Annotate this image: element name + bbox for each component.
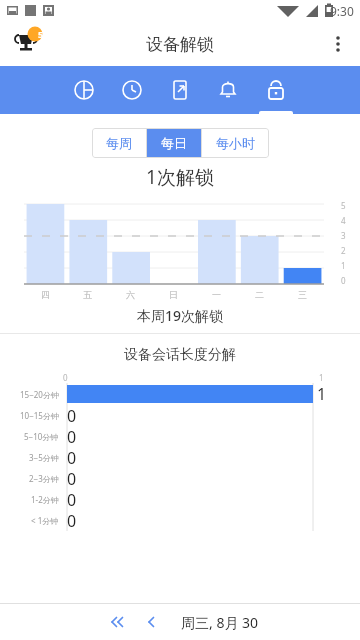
staticText: 一 [212,289,221,300]
button[interactable]: 5−10分钟 [0,426,360,447]
staticText: 每小时 [216,135,255,151]
button[interactable]: More options [316,22,360,66]
staticText: 设备解锁 [146,34,214,55]
staticText: 四 [41,289,50,300]
staticText: 1 [319,372,324,383]
button[interactable]: 每周 [92,128,146,158]
button[interactable]: 2−3分钟 [0,468,360,489]
staticText: 5 [341,200,346,211]
staticText: 六 [126,289,135,300]
staticText: 4 [341,215,346,226]
staticText: 0 [67,405,77,426]
button[interactable]: 每日 [147,128,201,158]
staticText: 1 [317,383,327,405]
button[interactable]: Previous week [101,605,135,639]
button[interactable]: Launches [156,66,204,114]
staticText: < 1分钟 [31,515,59,526]
button[interactable]: Achievements [10,26,46,62]
staticText: 5 [38,28,44,40]
staticText: 2 [341,245,346,256]
staticText: 1-2分钟 [31,494,59,505]
staticText: 三 [298,289,307,300]
staticText: 0 [67,510,77,531]
staticText: 本周19次解锁 [0,306,360,325]
staticText: 0 [67,447,77,468]
staticText: 设备会话长度分解 [0,346,360,364]
staticText: 1 [341,260,346,271]
button[interactable]: 3−5分钟 [0,447,360,468]
button[interactable]: 1-2分钟 [0,489,360,510]
button[interactable]: Notifications [204,66,252,114]
button[interactable]: Overview [60,66,108,114]
staticText: 5−10分钟 [24,431,59,442]
button[interactable]: 15−20分钟 [0,383,360,405]
staticText: 五 [83,289,92,300]
staticText: 0 [63,372,68,383]
button[interactable]: 10−15分钟 [0,405,360,426]
button[interactable]: < 1分钟 [0,510,360,531]
button[interactable]: Unlocks [252,66,300,114]
staticText: 0 [67,489,77,510]
staticText: 3 [341,230,346,241]
staticText: 0 [341,275,346,286]
staticText: 1次解锁 [0,164,360,190]
staticText: 0 [67,426,77,447]
staticText: 日 [169,289,178,300]
staticText: 9:30 [330,3,354,19]
staticText: 0 [67,468,77,489]
staticText: 每周 [106,135,132,151]
staticText: 15−20分钟 [20,389,59,400]
staticText: 3−5分钟 [29,452,59,463]
staticText: 10−15分钟 [20,410,59,421]
button[interactable]: Time [108,66,156,114]
staticText: 2−3分钟 [29,473,59,484]
staticText: 每日 [161,135,187,151]
button[interactable]: Previous day [135,605,169,639]
staticText: 周三, 8月 30 [181,613,259,632]
staticText: 二 [255,289,264,300]
button[interactable]: 每小时 [202,128,269,158]
